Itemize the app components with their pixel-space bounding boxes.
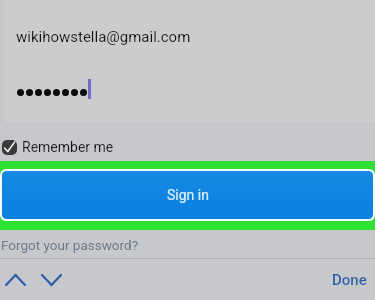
button[interactable]: Next field [37, 265, 66, 294]
button[interactable]: Forgot your password? [1, 237, 139, 253]
button[interactable]: Remember me [0, 130, 375, 164]
staticText: Done [332, 271, 367, 289]
button[interactable] [0, 63, 375, 120]
staticText: Remember me [22, 139, 114, 155]
button[interactable]: Done [321, 265, 375, 294]
button[interactable]: wikihowstella@gmail.com [0, 4, 375, 61]
staticText: Sign in [167, 187, 209, 203]
button[interactable]: Previous field [1, 265, 30, 294]
staticText: wikihowstella@gmail.com [16, 28, 191, 46]
button[interactable]: Sign in [2, 171, 373, 219]
